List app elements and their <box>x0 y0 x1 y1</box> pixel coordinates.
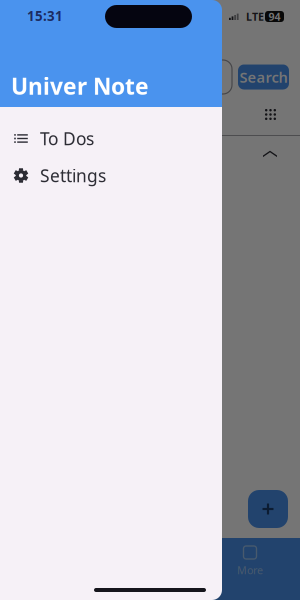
button[interactable]: To Dos <box>0 120 222 157</box>
staticText: LTE <box>246 9 264 24</box>
staticText: 94 <box>268 9 280 24</box>
button[interactable]: Collapse <box>255 142 285 165</box>
staticText: To Dos <box>40 127 94 150</box>
staticText: More <box>237 563 263 577</box>
button[interactable]: Add note <box>248 490 288 528</box>
staticText: 15:31 <box>27 7 63 25</box>
button[interactable]: Settings <box>0 157 222 194</box>
button[interactable]: More <box>258 102 283 127</box>
staticText: Univer Note <box>11 71 149 101</box>
button[interactable]: Search <box>238 64 289 89</box>
staticText: Settings <box>40 164 106 187</box>
button[interactable]: Notes <box>0 538 100 600</box>
button[interactable]: More <box>200 538 300 600</box>
staticText: Search <box>239 67 287 87</box>
button[interactable]: Tasks <box>100 538 200 600</box>
